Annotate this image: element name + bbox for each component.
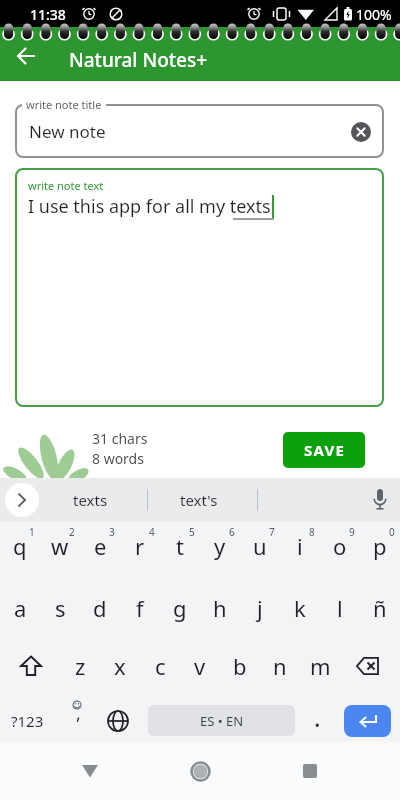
staticText: 31 chars xyxy=(92,429,148,448)
staticText: m xyxy=(310,651,331,681)
button[interactable]: p xyxy=(360,520,400,572)
button[interactable]: h xyxy=(200,582,240,634)
button[interactable]: c xyxy=(140,640,180,692)
button[interactable]: m xyxy=(300,640,340,692)
staticText: q xyxy=(13,531,27,561)
staticText: SAVE xyxy=(304,440,345,460)
button[interactable]: b xyxy=(220,640,260,692)
button[interactable]: g xyxy=(160,582,200,634)
button[interactable] xyxy=(76,757,104,785)
button[interactable]: , xyxy=(63,690,93,736)
staticText: z xyxy=(75,651,86,681)
button[interactable] xyxy=(104,707,132,735)
button[interactable]: SAVE xyxy=(283,432,365,468)
staticText: u xyxy=(253,531,267,561)
staticText: a xyxy=(14,593,27,623)
button[interactable] xyxy=(344,705,391,737)
staticText: 0 xyxy=(389,525,395,539)
staticText: 9 xyxy=(349,525,355,539)
staticText: I use this app for all my texts xyxy=(28,194,271,219)
button[interactable]: e xyxy=(80,520,120,572)
staticText: 8 xyxy=(309,525,315,539)
button[interactable]: q xyxy=(0,520,40,572)
staticText: Natural Notes+ xyxy=(69,47,208,73)
button[interactable] xyxy=(10,645,52,687)
staticText: 3 xyxy=(109,525,115,539)
staticText: 6 xyxy=(229,525,235,539)
button[interactable]: v xyxy=(180,640,220,692)
staticText: 2 xyxy=(69,525,75,539)
staticText: New note xyxy=(29,120,106,143)
staticText: ?123 xyxy=(11,711,44,731)
button[interactable]: texts xyxy=(50,478,130,522)
button[interactable] xyxy=(347,118,375,146)
staticText: 4 xyxy=(149,525,155,539)
button[interactable]: f xyxy=(120,582,160,634)
button[interactable]: ?123 xyxy=(1,698,53,744)
button[interactable]: w xyxy=(40,520,80,572)
staticText: p xyxy=(373,531,387,561)
staticText: 7 xyxy=(269,525,275,539)
staticText: text's xyxy=(180,490,218,510)
button[interactable]: s xyxy=(40,582,80,634)
staticText: e xyxy=(94,531,107,561)
button[interactable] xyxy=(15,104,384,158)
button[interactable] xyxy=(186,757,214,785)
staticText: f xyxy=(136,593,144,623)
staticText: y xyxy=(214,531,226,561)
staticText: ñ xyxy=(373,593,387,623)
button[interactable]: j xyxy=(240,582,280,634)
button[interactable]: y xyxy=(200,520,240,572)
staticText: n xyxy=(273,651,287,681)
staticText: s xyxy=(55,593,66,623)
button[interactable]: o xyxy=(320,520,360,572)
button[interactable] xyxy=(5,483,39,517)
button[interactable]: d xyxy=(80,582,120,634)
staticText: 11:38 xyxy=(30,5,66,24)
button[interactable]: . xyxy=(302,694,332,740)
staticText: h xyxy=(213,593,227,623)
button[interactable]: r xyxy=(120,520,160,572)
button[interactable]: u xyxy=(240,520,280,572)
button[interactable] xyxy=(347,645,389,687)
staticText: 8 words xyxy=(92,449,144,468)
button[interactable]: n xyxy=(260,640,300,692)
button[interactable]: i xyxy=(280,520,320,572)
staticText: l xyxy=(337,593,343,623)
staticText: w xyxy=(51,531,69,561)
button[interactable] xyxy=(366,486,394,514)
button[interactable]: t xyxy=(160,520,200,572)
staticText: v xyxy=(194,651,206,681)
staticText: d xyxy=(93,593,107,623)
staticText: 100% xyxy=(356,5,392,24)
staticText: t xyxy=(176,531,184,561)
button[interactable]: ñ xyxy=(360,582,400,634)
staticText: j xyxy=(257,593,263,623)
button[interactable]: z xyxy=(60,640,100,692)
staticText: write note title xyxy=(26,97,102,112)
staticText: b xyxy=(233,651,247,681)
staticText: i xyxy=(297,531,303,561)
staticText: ES • EN xyxy=(200,712,244,730)
button[interactable]: l xyxy=(320,582,360,634)
button[interactable]: k xyxy=(280,582,320,634)
button[interactable]: x xyxy=(100,640,140,692)
staticText: k xyxy=(294,593,306,623)
button[interactable]: ES • EN xyxy=(148,705,295,736)
button[interactable]: a xyxy=(0,582,40,634)
staticText: write note text xyxy=(28,178,104,193)
staticText: c xyxy=(155,651,166,681)
staticText: 1 xyxy=(29,525,35,539)
staticText: x xyxy=(114,651,126,681)
button[interactable] xyxy=(8,40,44,72)
staticText: texts xyxy=(73,490,108,510)
staticText: g xyxy=(173,593,187,623)
staticText: , xyxy=(76,701,81,726)
button[interactable] xyxy=(15,168,384,407)
staticText: . xyxy=(314,701,321,734)
staticText: r xyxy=(135,531,145,561)
staticText: 5 xyxy=(189,525,195,539)
staticText: o xyxy=(333,531,347,561)
button[interactable]: text's xyxy=(159,478,239,522)
button[interactable] xyxy=(296,757,324,785)
